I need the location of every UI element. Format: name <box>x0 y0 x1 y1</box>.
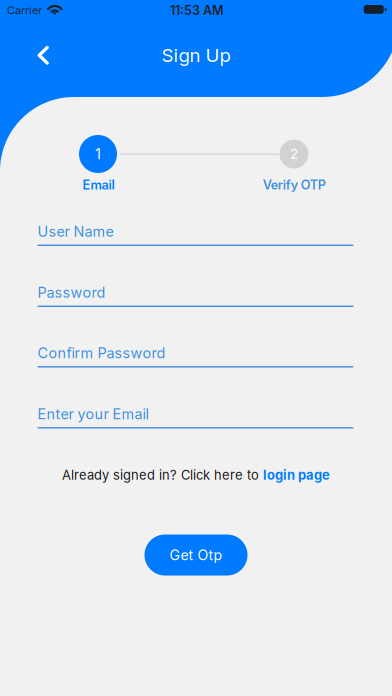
staticText: Already signed in? Click here to <box>62 467 263 483</box>
button[interactable]: Password <box>37 281 353 307</box>
button[interactable]: 2 <box>272 132 316 176</box>
button[interactable]: login page <box>263 467 330 483</box>
staticText: 1 <box>95 145 101 163</box>
staticText: User Name <box>37 223 113 240</box>
staticText: Sign Up <box>161 44 230 67</box>
staticText: login page <box>263 467 330 483</box>
button[interactable]: Confirm Password <box>37 341 353 367</box>
staticText: Confirm Password <box>37 344 165 362</box>
staticText: Enter your Email <box>37 405 148 423</box>
button[interactable]: 1 <box>76 132 120 176</box>
staticText: Get Otp <box>169 546 222 563</box>
button[interactable]: Enter your Email <box>37 402 353 428</box>
staticText: 11:53 AM <box>170 3 224 18</box>
button[interactable]: Get Otp <box>144 534 247 575</box>
staticText: 2 <box>290 146 298 162</box>
staticText: Verify OTP <box>263 177 326 192</box>
staticText: Carrier <box>7 4 42 17</box>
button[interactable]: User Name <box>37 220 353 246</box>
staticText: Password <box>37 284 105 301</box>
button[interactable]: Back <box>21 33 65 77</box>
staticText: Email <box>82 177 114 192</box>
